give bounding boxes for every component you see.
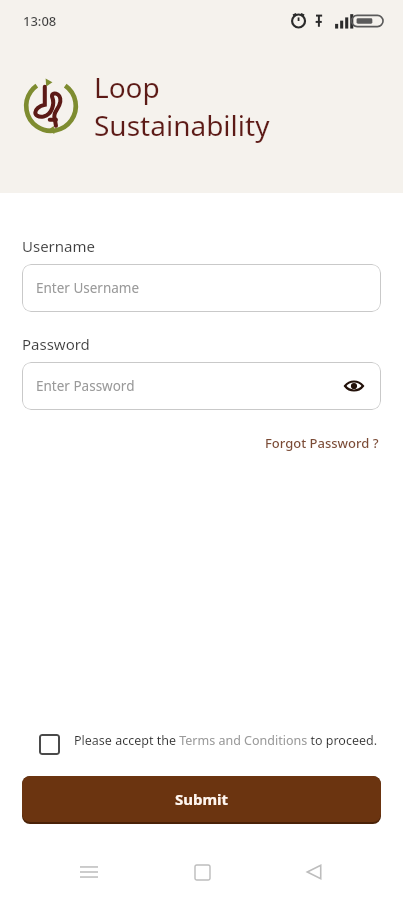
staticText: Enter Password: [36, 377, 135, 395]
button[interactable]: Home: [178, 848, 226, 896]
button[interactable]: Back: [290, 848, 338, 896]
button[interactable]: Forgot Password ?: [263, 432, 381, 454]
button[interactable]: Submit: [22, 776, 381, 822]
staticText: Password: [22, 334, 90, 354]
button[interactable]: Recent apps: [65, 848, 113, 896]
button[interactable]: Show password: [341, 373, 367, 399]
staticText: Enter Username: [36, 279, 140, 297]
staticText: Sustainability: [94, 106, 270, 144]
button[interactable]: Please accept the Terms and Conditions t…: [22, 728, 381, 759]
button[interactable]: Enter Password: [22, 362, 381, 410]
staticText: Submit: [175, 789, 229, 809]
staticText: Username: [22, 236, 95, 256]
staticText: Please accept the Terms and Conditions t…: [74, 732, 378, 749]
staticText: Loop: [94, 68, 160, 106]
staticText: Forgot Password ?: [265, 434, 379, 452]
button[interactable]: Enter Username: [22, 264, 381, 312]
staticText: 13:08: [23, 12, 57, 30]
